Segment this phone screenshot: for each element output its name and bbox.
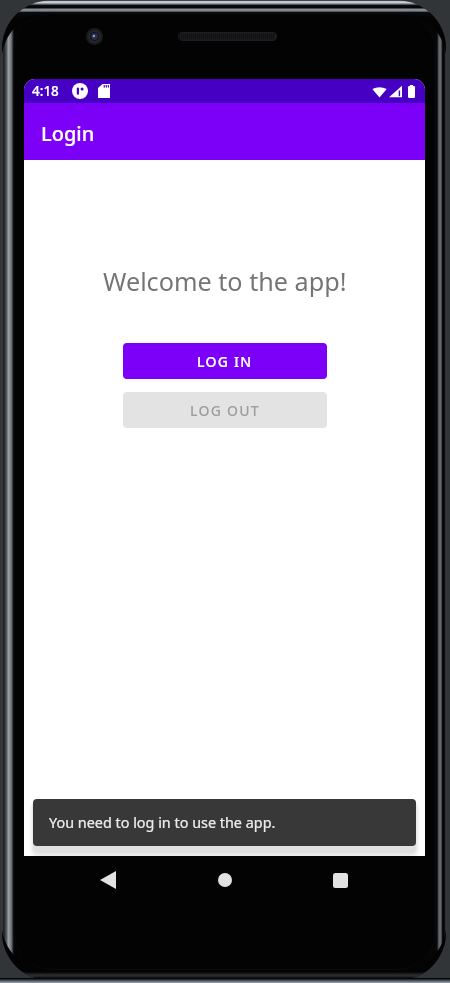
- staticText: Welcome to the app!: [103, 264, 347, 298]
- button[interactable]: You need to log in to use the app.: [33, 799, 416, 846]
- button[interactable]: LOG OUT: [123, 392, 327, 428]
- staticText: LOG OUT: [190, 401, 260, 420]
- button[interactable]: LOG IN: [123, 343, 327, 379]
- staticText: 4:18: [32, 82, 59, 100]
- button[interactable]: Recents: [316, 856, 364, 904]
- staticText: You need to log in to use the app.: [49, 813, 276, 833]
- button[interactable]: Home: [201, 856, 249, 904]
- staticText: LOG IN: [197, 352, 253, 371]
- button[interactable]: Back: [84, 856, 132, 904]
- staticText: Login: [41, 120, 95, 147]
